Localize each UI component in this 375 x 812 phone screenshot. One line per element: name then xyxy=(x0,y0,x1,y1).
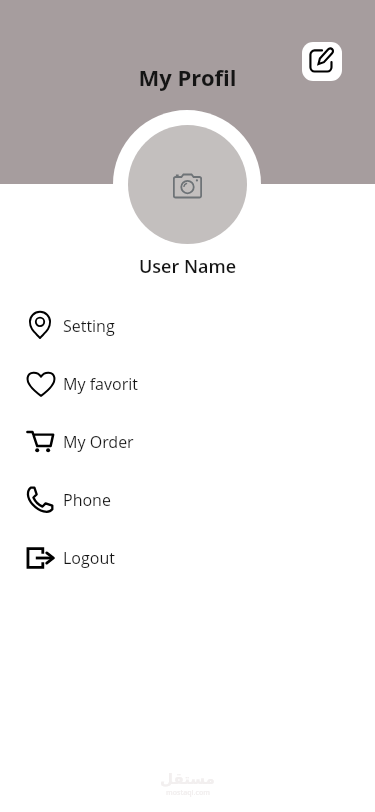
button[interactable]: My Order xyxy=(0,413,375,471)
button[interactable]: Phone xyxy=(0,471,375,529)
button[interactable]: Logout xyxy=(0,529,375,587)
staticText: Setting xyxy=(63,315,115,337)
staticText: My Order xyxy=(63,431,134,453)
staticText: mostaql.com xyxy=(166,788,210,798)
button[interactable]: Edit profile xyxy=(302,42,342,81)
staticText: Phone xyxy=(63,489,111,511)
staticText: My favorit xyxy=(63,373,138,395)
button[interactable]: Setting xyxy=(0,297,375,355)
staticText: مستقل xyxy=(160,770,215,787)
staticText: Logout xyxy=(63,547,115,569)
staticText: User Name xyxy=(0,254,375,279)
button[interactable]: My favorit xyxy=(0,355,375,413)
staticText: My Profil xyxy=(0,62,375,92)
button[interactable]: Change profile photo xyxy=(128,125,247,244)
